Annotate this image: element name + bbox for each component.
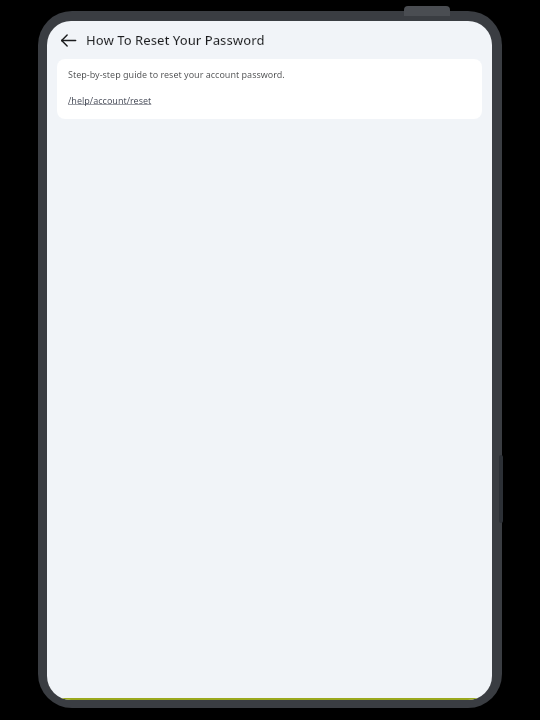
staticText: /help/account/reset bbox=[68, 94, 152, 106]
button[interactable]: Back bbox=[52, 24, 84, 56]
button[interactable]: /help/account/reset bbox=[68, 94, 152, 106]
button[interactable]: Step-by-step guide to reset your account… bbox=[57, 59, 482, 119]
staticText: Step-by-step guide to reset your account… bbox=[68, 68, 285, 80]
staticText: How To Reset Your Password bbox=[86, 31, 265, 49]
